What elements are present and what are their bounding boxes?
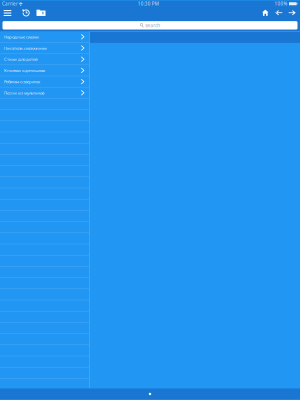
button[interactable] — [0, 323, 89, 334]
staticText: Песни из мультиков — [4, 90, 44, 96]
button[interactable]: Писатели-сказочники — [0, 43, 89, 54]
button[interactable]: Forward — [286, 8, 299, 18]
button[interactable]: Книжки о детишках — [0, 65, 89, 76]
button[interactable]: Ребятам о зверятах — [0, 76, 89, 87]
staticText: 10:30 PM — [138, 1, 159, 7]
button[interactable] — [0, 311, 89, 323]
button[interactable] — [0, 99, 89, 110]
button[interactable]: History — [19, 7, 33, 18]
button[interactable]: Народные сказки — [0, 31, 89, 43]
staticText: Carrier — [2, 1, 18, 7]
button[interactable] — [0, 211, 89, 222]
button[interactable] — [0, 222, 89, 233]
button[interactable]: Search — [2, 21, 297, 30]
button[interactable]: Стихи для детей — [0, 54, 89, 65]
button[interactable] — [0, 267, 89, 278]
button[interactable]: Bookmarks — [33, 7, 48, 18]
button[interactable] — [0, 155, 89, 166]
button[interactable] — [0, 334, 89, 345]
button[interactable] — [0, 110, 89, 121]
staticText: Ребятам о зверятах — [4, 79, 40, 84]
staticText: search — [145, 22, 160, 29]
staticText: 100% — [274, 1, 287, 7]
button[interactable]: Home — [259, 8, 272, 18]
button[interactable] — [0, 199, 89, 211]
button[interactable] — [0, 166, 89, 177]
button[interactable] — [0, 367, 89, 379]
button[interactable] — [0, 278, 89, 289]
button[interactable]: Песни из мультиков — [0, 87, 89, 99]
button[interactable]: Menu — [0, 8, 15, 18]
button[interactable] — [0, 132, 89, 143]
button[interactable]: Back — [272, 8, 285, 18]
button[interactable] — [0, 255, 89, 267]
staticText: Стихи для детей — [4, 56, 38, 62]
staticText: Народные сказки — [4, 34, 39, 40]
button[interactable] — [0, 143, 89, 155]
staticText: Писатели-сказочники — [4, 45, 47, 51]
staticText: Книжки о детишках — [4, 67, 45, 73]
